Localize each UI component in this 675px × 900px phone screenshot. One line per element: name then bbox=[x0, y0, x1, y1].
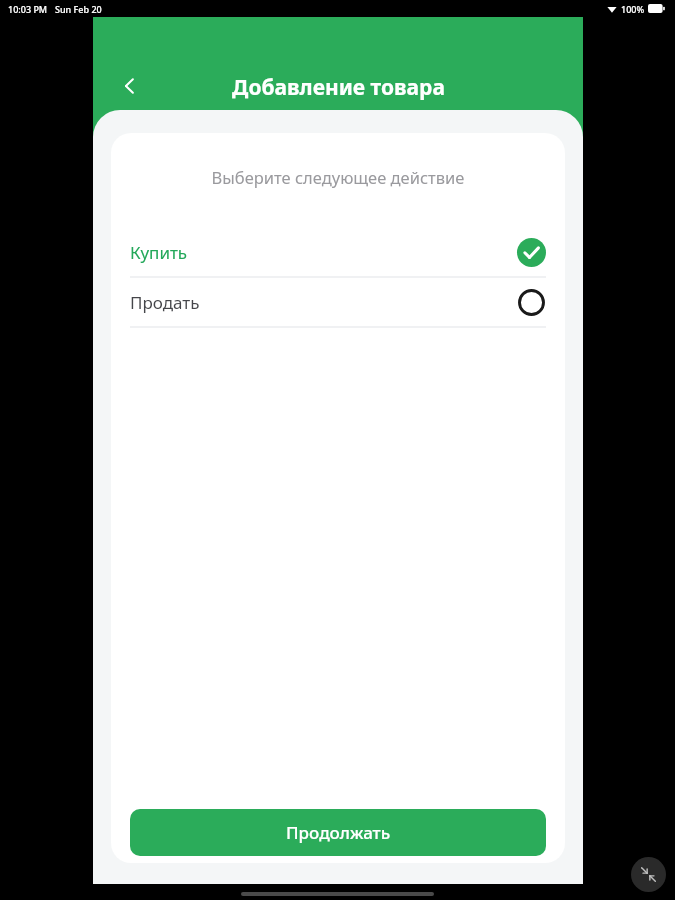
button[interactable]: Продолжать bbox=[130, 809, 546, 856]
staticText: Купить bbox=[130, 241, 188, 264]
staticText: 10:03 PM bbox=[8, 3, 48, 15]
button[interactable]: Collapse window bbox=[631, 857, 666, 892]
button[interactable]: Продать bbox=[111, 278, 565, 326]
staticText: 100% bbox=[621, 3, 645, 15]
staticText: Sun Feb 20 bbox=[55, 3, 102, 15]
staticText: Выберите следующее действие bbox=[111, 166, 565, 188]
staticText: Продолжать bbox=[286, 821, 391, 844]
staticText: Продать bbox=[130, 291, 200, 314]
button[interactable]: Back bbox=[109, 65, 151, 107]
button[interactable]: Купить bbox=[111, 228, 565, 276]
staticText: Добавление товара bbox=[232, 73, 445, 102]
